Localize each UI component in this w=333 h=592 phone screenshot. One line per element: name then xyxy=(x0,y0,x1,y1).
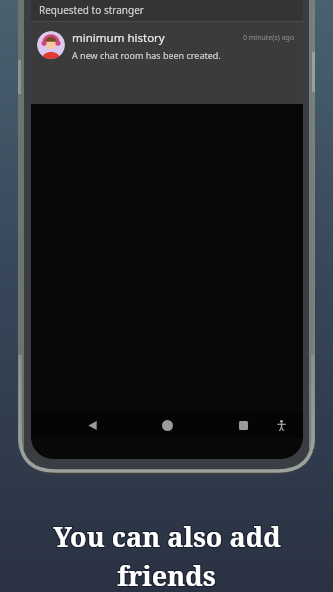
staticText: friends xyxy=(116,557,215,592)
staticText: You can also add xyxy=(52,518,280,555)
button[interactable]: Recent apps xyxy=(230,412,256,438)
staticText: friends xyxy=(118,557,217,592)
staticText: friends xyxy=(117,558,216,592)
staticText: friends xyxy=(116,558,215,592)
staticText: friends xyxy=(118,558,217,592)
staticText: You can also add xyxy=(52,517,280,554)
staticText: friends xyxy=(117,556,216,592)
staticText: You can also add xyxy=(54,517,282,554)
staticText: friends xyxy=(118,556,217,592)
staticText: minimum history xyxy=(72,30,243,46)
button[interactable]: minimum history xyxy=(31,22,303,68)
button[interactable]: Back xyxy=(79,412,105,438)
button[interactable]: Accessibility xyxy=(268,412,294,438)
staticText: Requested to stranger xyxy=(39,3,144,17)
staticText: You can also add xyxy=(52,519,280,556)
staticText: A new chat room has been created. xyxy=(72,49,221,61)
staticText: You can also add xyxy=(54,518,282,555)
staticText: You can also add xyxy=(53,518,281,555)
staticText: You can also add xyxy=(54,519,282,556)
staticText: friends xyxy=(116,556,215,592)
staticText: 0 minute(s) ago xyxy=(243,33,295,43)
staticText: friends xyxy=(117,557,216,592)
staticText: You can also add xyxy=(53,519,281,556)
button[interactable]: Home xyxy=(154,412,180,438)
staticText: You can also add xyxy=(53,517,281,554)
